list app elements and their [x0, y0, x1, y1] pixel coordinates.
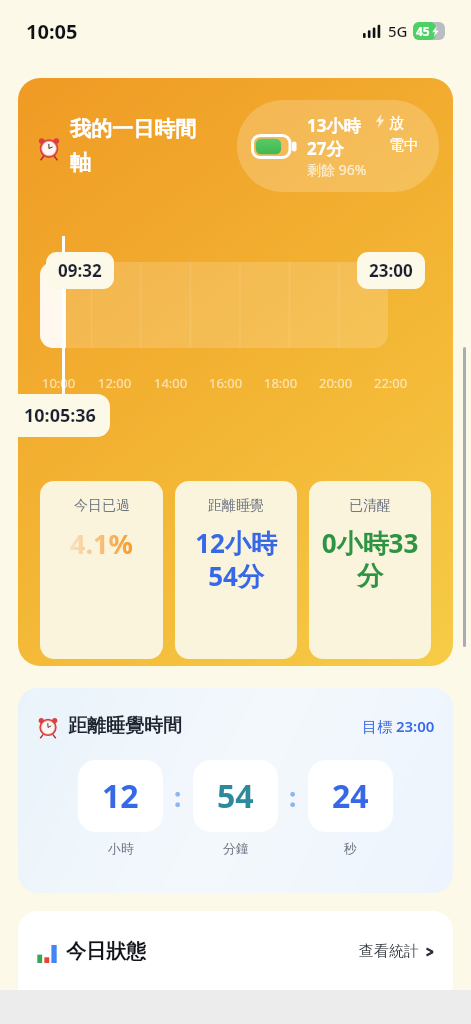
button[interactable]: 今日狀態 — [18, 911, 453, 990]
staticText: 14:00 — [154, 374, 188, 392]
staticText: 放 電中 — [389, 114, 419, 154]
staticText: 20:00 — [319, 374, 353, 392]
staticText: 10:05 — [26, 18, 78, 45]
staticText: 今日已過 — [74, 497, 130, 515]
staticText: 45 — [416, 23, 430, 39]
staticText: 09:32 — [58, 259, 102, 282]
button[interactable]: 已清醒 — [309, 481, 431, 659]
staticText: 秒 — [344, 840, 357, 856]
button[interactable]: 24 — [308, 760, 393, 832]
button[interactable]: 距離睡覺 — [175, 481, 297, 659]
staticText: 18:00 — [264, 374, 298, 392]
staticText: 小時 — [108, 840, 134, 856]
button[interactable] — [18, 78, 453, 666]
button[interactable]: 距離睡覺時間 — [18, 688, 453, 893]
staticText: 10:05:36 — [24, 403, 96, 428]
staticText: 0小時33分 — [315, 525, 425, 593]
staticText: 54 — [217, 774, 254, 818]
staticText: 22:00 — [374, 374, 408, 392]
staticText: 12小時54分 — [181, 525, 291, 594]
staticText: 13小時 — [307, 114, 361, 137]
staticText: 23:00 — [369, 259, 413, 282]
staticText: 12:00 — [98, 374, 132, 392]
staticText: 距離睡覺 — [208, 497, 264, 515]
button[interactable]: 13小時 — [237, 100, 439, 192]
staticText: 距離睡覺時間 — [68, 714, 182, 738]
staticText: 24 — [332, 774, 369, 818]
staticText: 分鐘 — [223, 840, 249, 856]
staticText: 27分 — [307, 137, 344, 160]
staticText: 10:00 — [42, 374, 76, 392]
staticText: 我的一日時間軸 — [70, 116, 214, 177]
staticText: : — [289, 779, 297, 814]
staticText: 12 — [102, 774, 139, 818]
staticText: 5G — [388, 21, 408, 41]
button[interactable]: 12 — [78, 760, 163, 832]
staticText: 已清醒 — [349, 497, 391, 515]
staticText: 今日狀態 — [66, 939, 146, 964]
button[interactable]: 54 — [193, 760, 278, 832]
button[interactable]: 今日已過 — [40, 481, 163, 659]
staticText: 目標 23:00 — [362, 716, 435, 736]
staticText: 剩餘 96% — [307, 160, 367, 179]
staticText: 4.1% — [70, 525, 133, 562]
staticText: 16:00 — [209, 374, 243, 392]
staticText: 查看統計 — [359, 942, 419, 961]
staticText: : — [174, 779, 182, 814]
